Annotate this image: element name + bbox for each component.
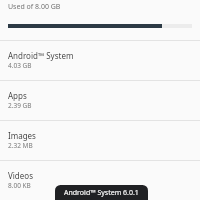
staticText: Apps <box>8 90 27 101</box>
staticText: Images <box>8 130 36 141</box>
button[interactable]: Images <box>0 120 200 160</box>
button[interactable]: Android™ System <box>0 40 200 80</box>
staticText: Android™ System 6.0.1 <box>64 188 139 198</box>
staticText: 8.00 KB <box>8 181 31 190</box>
staticText: Used of 8.00 GB <box>8 2 61 12</box>
button[interactable]: Apps <box>0 80 200 120</box>
button[interactable]: Videos <box>0 160 200 200</box>
staticText: 4.03 GB <box>8 61 32 70</box>
staticText: 2.39 GB <box>8 101 32 110</box>
staticText: 2.32 MB <box>8 141 33 150</box>
staticText: Android™ System <box>8 50 74 61</box>
staticText: Videos <box>8 170 33 181</box>
button[interactable]: Android™ System 6.0.1 <box>55 185 148 200</box>
